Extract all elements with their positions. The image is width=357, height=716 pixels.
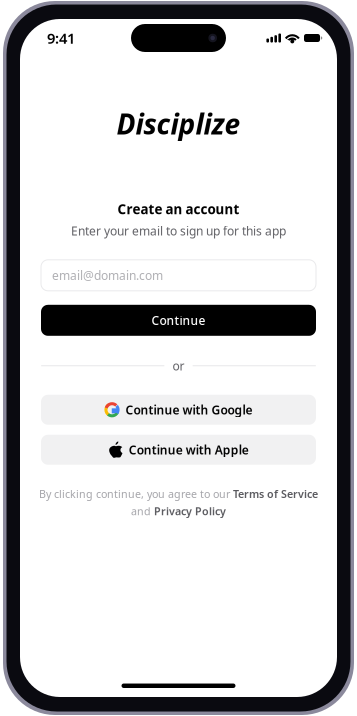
button[interactable]: Continue with Google [41,395,316,425]
staticText: or [172,358,184,374]
staticText: email@domain.com [52,267,163,283]
staticText: Create an account [117,200,239,218]
staticText: Continue with Google [126,402,253,418]
button[interactable]: email@domain.com [41,260,316,291]
staticText: By clicking continue, you agree to our [39,487,233,501]
staticText: Privacy Policy [154,504,226,518]
staticText: Enter your email to sign up for this app [71,223,286,239]
staticText: Disciplize [116,105,240,142]
button[interactable]: Continue with Apple [41,435,316,465]
staticText: 9:41 [47,28,75,48]
staticText: Continue with Apple [129,442,249,458]
staticText: Terms of Service [233,487,318,501]
staticText: and [131,504,154,518]
staticText: Continue [151,312,205,328]
button[interactable]: Continue [41,305,316,336]
